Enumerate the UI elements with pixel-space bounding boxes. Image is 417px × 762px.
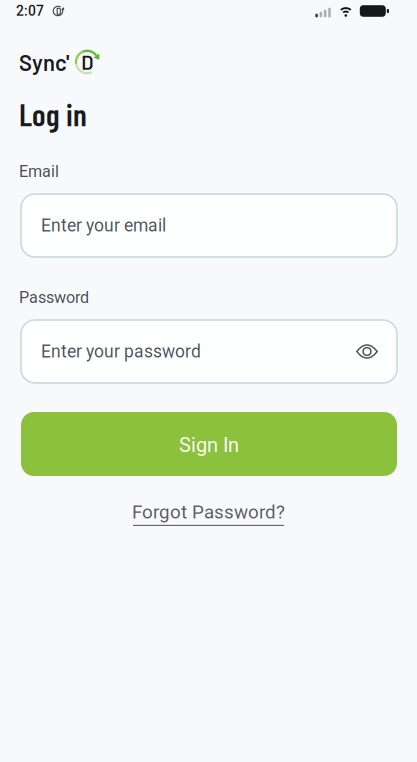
staticText: D [81, 50, 93, 74]
staticText: D [56, 6, 61, 16]
button[interactable]: Forgot Password? [132, 501, 285, 526]
button[interactable]: Enter your password [21, 320, 397, 383]
staticText: Password [19, 288, 89, 307]
button[interactable]: Enter your email [21, 194, 397, 257]
button[interactable] [356, 344, 378, 359]
button[interactable]: Sign In [21, 412, 397, 476]
staticText: 2:07 [16, 3, 44, 19]
staticText: Enter your email [41, 215, 166, 236]
staticText: Email [19, 162, 59, 181]
staticText: Log in [19, 95, 87, 133]
staticText: Sign In [179, 433, 239, 457]
staticText: Enter your password [41, 341, 201, 362]
staticText: Forgot Password? [132, 501, 285, 523]
staticText: Sync' [19, 49, 69, 75]
